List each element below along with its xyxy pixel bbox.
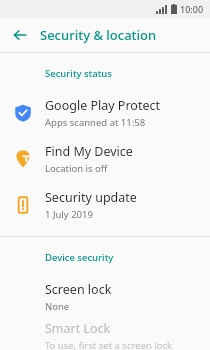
button[interactable]: Google Play Protect: [0, 90, 210, 136]
button[interactable]: Screen lock: [0, 274, 210, 320]
staticText: Security & location: [40, 26, 157, 44]
staticText: None: [45, 300, 70, 313]
staticText: Google Play Protect: [45, 97, 160, 114]
staticText: Screen lock: [45, 281, 112, 298]
staticText: Find My Device: [45, 143, 133, 160]
staticText: Smart Lock: [45, 320, 111, 337]
staticText: 1 July 2019: [45, 208, 93, 221]
button[interactable]: Security update: [0, 182, 210, 228]
staticText: Security update: [45, 189, 137, 206]
button[interactable]: Find My Device: [0, 136, 210, 182]
staticText: Location is off: [45, 162, 108, 175]
staticText: Apps scanned at 11:58: [45, 116, 146, 129]
staticText: 10:00: [180, 3, 204, 15]
button[interactable]: Smart Lock: [0, 320, 210, 350]
staticText: Device security: [45, 251, 114, 264]
button[interactable]: Back: [6, 21, 34, 49]
staticText: Security status: [45, 67, 112, 80]
staticText: To use, first set a screen lock: [45, 339, 173, 350]
